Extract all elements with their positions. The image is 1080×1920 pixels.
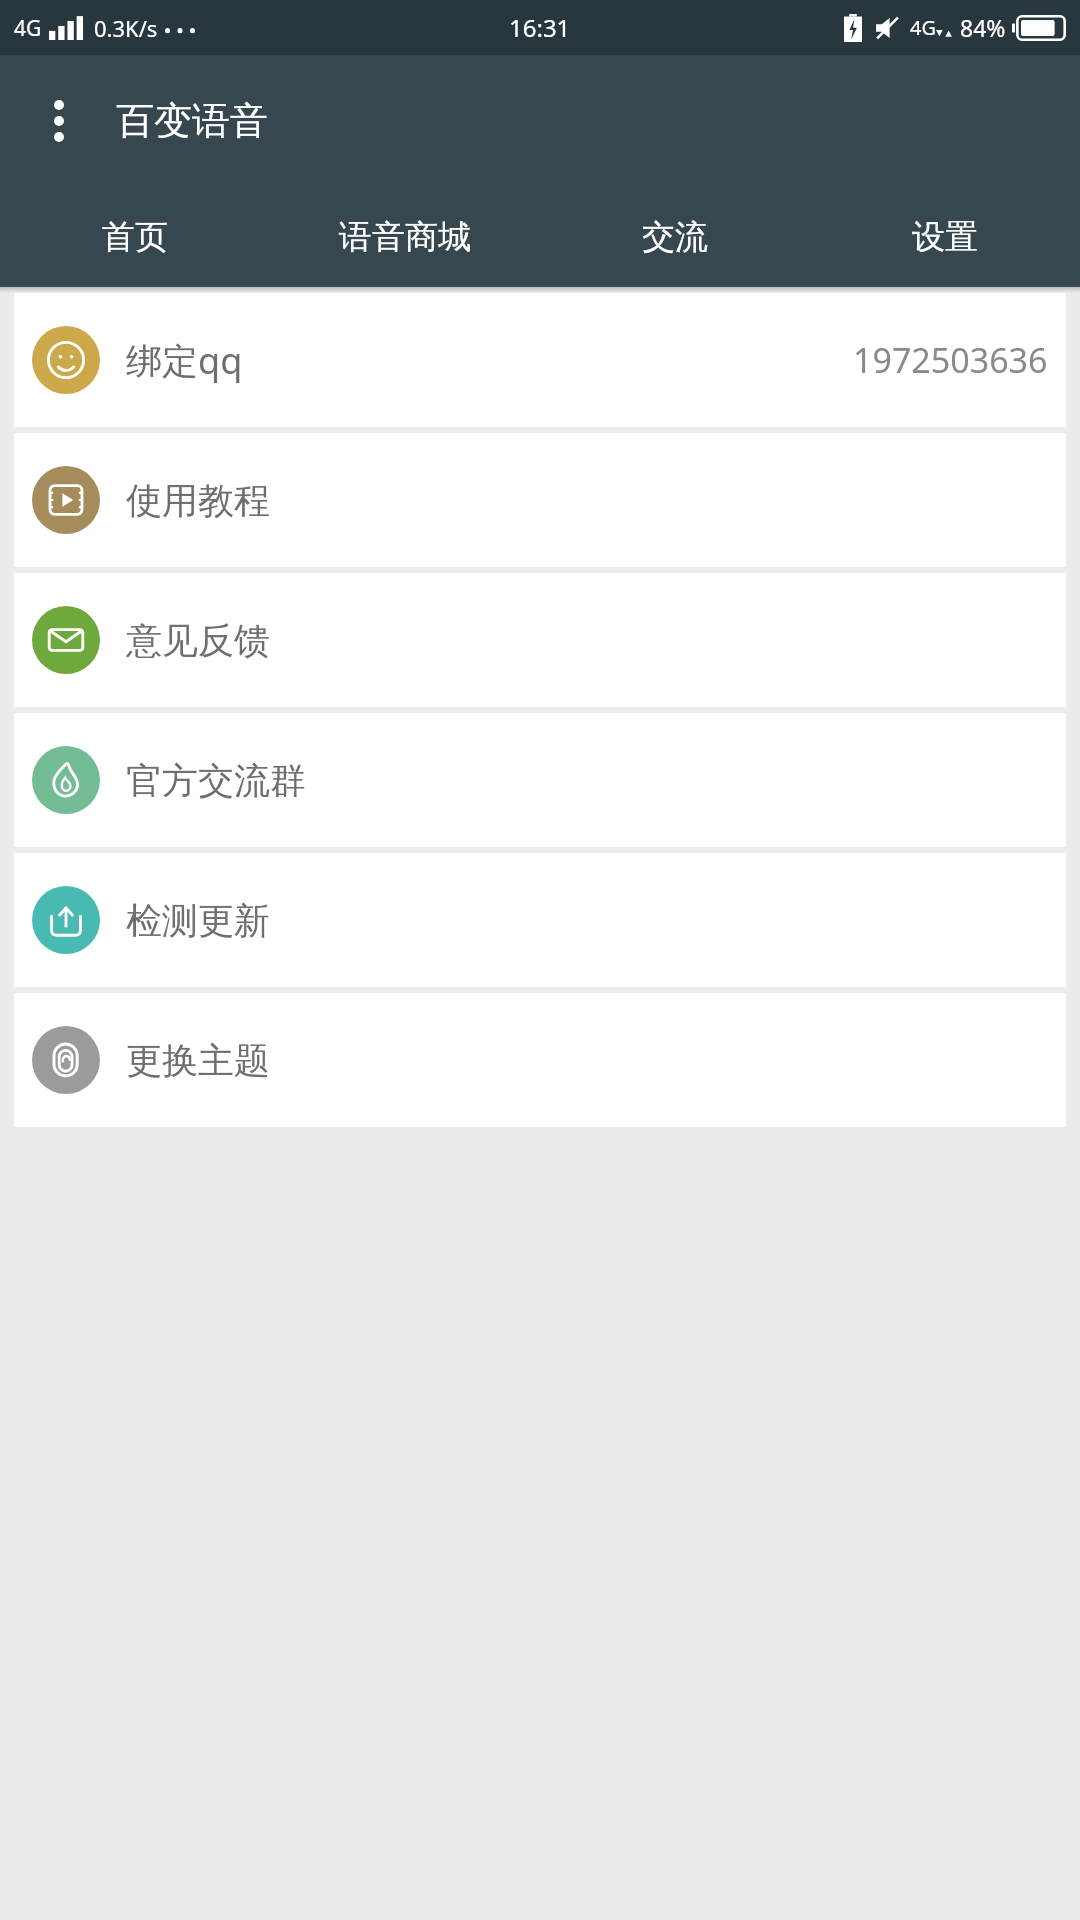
staticText: 百变语音 xyxy=(116,97,268,145)
staticText: 首页 xyxy=(102,216,168,258)
button[interactable]: 首页 xyxy=(0,187,270,287)
staticText: 16:31 xyxy=(509,11,571,44)
staticText: 4G xyxy=(910,14,936,41)
staticText: 4G xyxy=(14,14,42,43)
staticText: 检测更新 xyxy=(126,898,270,943)
button[interactable]: 更换主题 xyxy=(14,993,1066,1127)
staticText: 语音商城 xyxy=(339,216,471,258)
button[interactable]: 意见反馈 xyxy=(14,573,1066,707)
staticText: 绑定qq xyxy=(126,336,243,385)
button[interactable]: 官方交流群 xyxy=(14,713,1066,847)
button[interactable]: 语音商城 xyxy=(270,187,540,287)
button[interactable]: 设置 xyxy=(810,187,1080,287)
button[interactable]: 使用教程 xyxy=(14,433,1066,567)
button[interactable]: 绑定qq xyxy=(14,293,1066,427)
staticText: 设置 xyxy=(912,216,978,258)
staticText: 官方交流群 xyxy=(126,758,306,803)
button[interactable]: 检测更新 xyxy=(14,853,1066,987)
staticText: 0.3K/s xyxy=(94,13,158,43)
button[interactable]: More options xyxy=(30,92,88,150)
button[interactable]: 交流 xyxy=(540,187,810,287)
staticText: 1972503636 xyxy=(853,337,1048,383)
staticText: 使用教程 xyxy=(126,478,270,523)
staticText: 更换主题 xyxy=(126,1038,270,1083)
staticText: 交流 xyxy=(642,216,708,258)
staticText: 84% xyxy=(960,12,1006,43)
staticText: 意见反馈 xyxy=(126,618,270,663)
